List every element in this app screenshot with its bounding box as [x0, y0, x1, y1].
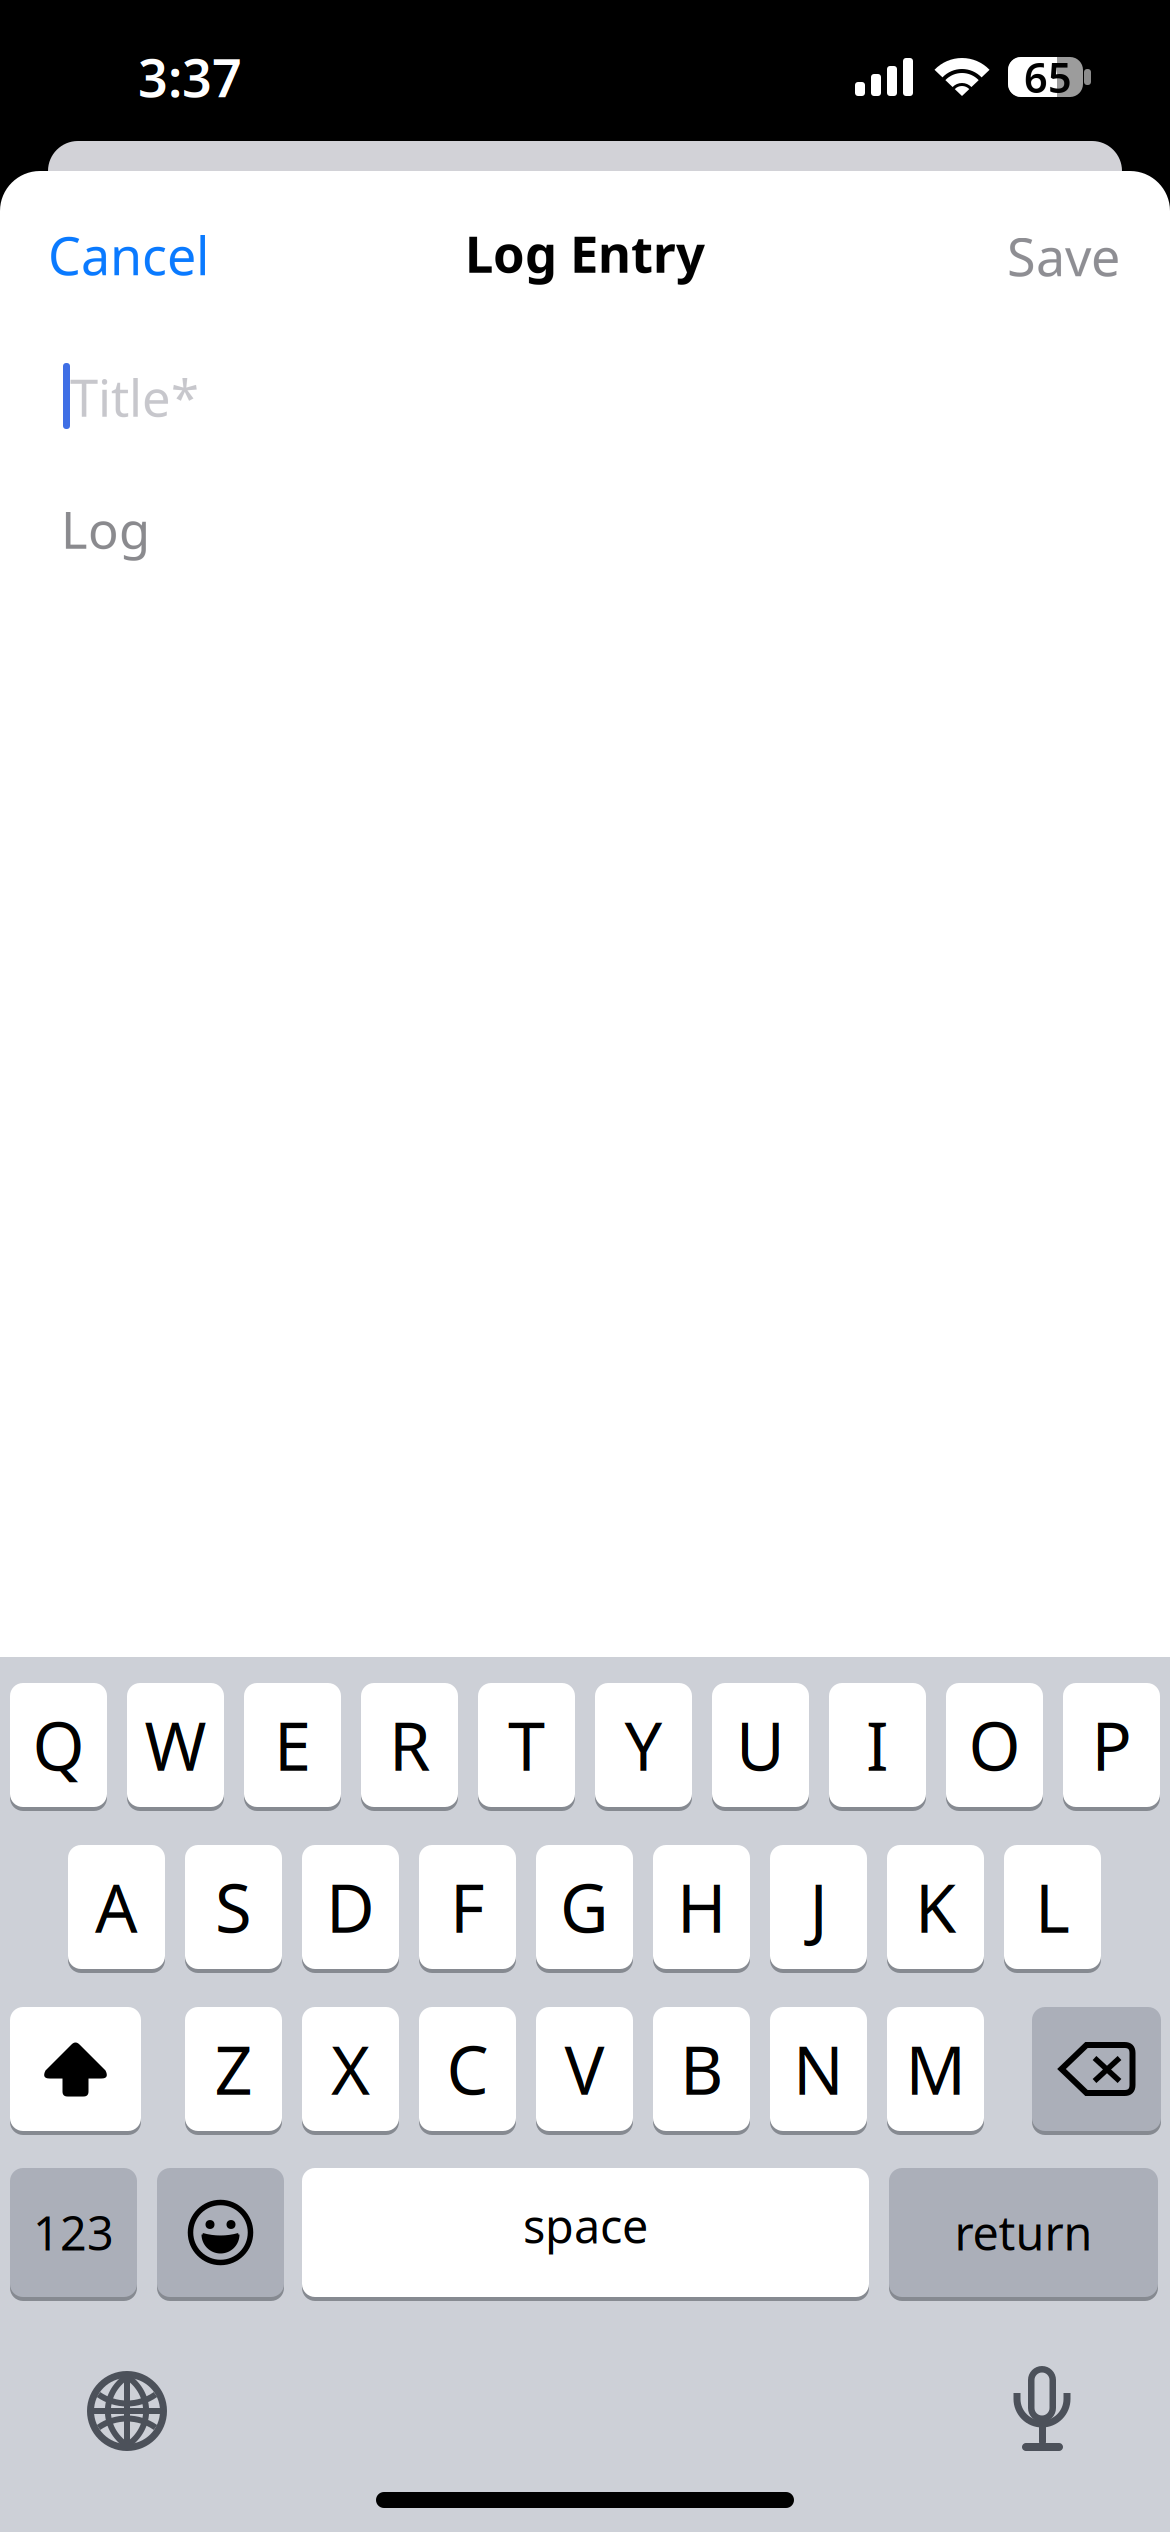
- button[interactable]: O: [946, 1683, 1043, 1811]
- button[interactable]: F: [419, 1845, 516, 1973]
- staticText: H: [677, 1863, 726, 1951]
- staticText: X: [331, 2025, 370, 2113]
- staticText: Z: [214, 2025, 252, 2113]
- button[interactable]: L: [1004, 1845, 1101, 1973]
- button[interactable]: I: [829, 1683, 926, 1811]
- staticText: Y: [624, 1701, 662, 1789]
- staticText: 123: [33, 2201, 114, 2263]
- staticText: G: [560, 1863, 609, 1951]
- staticText: space: [523, 2194, 648, 2256]
- staticText: Cancel: [48, 220, 209, 290]
- staticText: Log: [61, 495, 150, 563]
- button[interactable]: A: [68, 1845, 165, 1973]
- button[interactable]: Dictate: [1013, 2366, 1071, 2452]
- button[interactable]: H: [653, 1845, 750, 1973]
- button[interactable]: space: [302, 2168, 869, 2301]
- staticText: Q: [32, 1701, 84, 1789]
- button[interactable]: Emoji: [157, 2168, 284, 2301]
- button[interactable]: B: [653, 2007, 750, 2135]
- staticText: U: [736, 1701, 785, 1789]
- button[interactable]: return: [889, 2168, 1158, 2301]
- button[interactable]: N: [770, 2007, 867, 2135]
- staticText: P: [1091, 1701, 1131, 1789]
- button[interactable]: Next keyboard: [90, 2374, 163, 2447]
- staticText: 3:37: [138, 42, 242, 112]
- button[interactable]: C: [419, 2007, 516, 2135]
- staticText: C: [446, 2025, 488, 2113]
- button[interactable]: R: [361, 1683, 458, 1811]
- staticText: return: [954, 2201, 1092, 2263]
- staticText: V: [564, 2025, 604, 2113]
- button[interactable]: Delete: [1032, 2007, 1161, 2135]
- button[interactable]: M: [887, 2007, 984, 2135]
- staticText: 65: [1024, 50, 1072, 104]
- button[interactable]: S: [185, 1845, 282, 1973]
- staticText: W: [144, 1701, 206, 1789]
- button[interactable]: J: [770, 1845, 867, 1973]
- staticText: J: [809, 1863, 827, 1951]
- button[interactable]: Shift: [10, 2007, 141, 2135]
- staticText: A: [95, 1863, 138, 1951]
- staticText: D: [326, 1863, 375, 1951]
- button[interactable]: K: [887, 1845, 984, 1973]
- button[interactable]: E: [244, 1683, 341, 1811]
- staticText: T: [508, 1701, 545, 1789]
- button[interactable]: P: [1063, 1683, 1160, 1811]
- staticText: R: [389, 1701, 430, 1789]
- staticText: E: [274, 1701, 311, 1789]
- staticText: I: [866, 1701, 889, 1789]
- button[interactable]: D: [302, 1845, 399, 1973]
- staticText: B: [680, 2025, 723, 2113]
- staticText: L: [1035, 1863, 1070, 1951]
- staticText: O: [968, 1701, 1020, 1789]
- staticText: K: [915, 1863, 956, 1951]
- staticText: Title*: [70, 363, 199, 431]
- staticText: Save: [1007, 221, 1120, 291]
- button[interactable]: U: [712, 1683, 809, 1811]
- staticText: Log Entry: [465, 219, 705, 287]
- button[interactable]: X: [302, 2007, 399, 2135]
- staticText: N: [793, 2025, 844, 2113]
- button[interactable]: 123: [10, 2168, 137, 2301]
- button[interactable]: W: [127, 1683, 224, 1811]
- button[interactable]: Z: [185, 2007, 282, 2135]
- button[interactable]: T: [478, 1683, 575, 1811]
- button[interactable]: Save: [820, 206, 1120, 306]
- button[interactable]: Q: [10, 1683, 107, 1811]
- staticText: M: [905, 2025, 965, 2113]
- button[interactable]: Cancel: [48, 205, 348, 305]
- staticText: F: [450, 1863, 485, 1951]
- button[interactable]: V: [536, 2007, 633, 2135]
- button[interactable]: Y: [595, 1683, 692, 1811]
- staticText: S: [215, 1863, 252, 1951]
- button[interactable]: G: [536, 1845, 633, 1973]
